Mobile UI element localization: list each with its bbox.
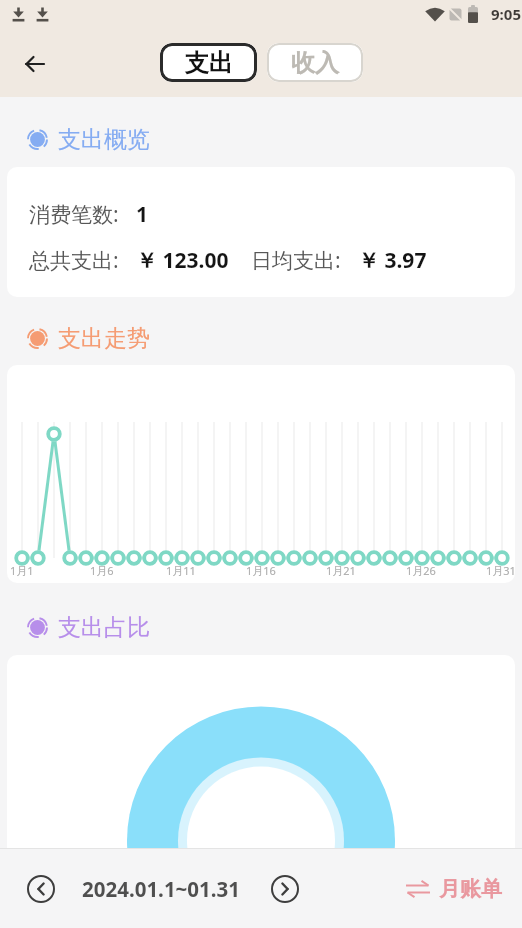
- staticText: 2024.01.1~01.31: [82, 875, 240, 903]
- button[interactable]: 收入: [267, 43, 363, 82]
- staticText: 1月16: [246, 563, 276, 578]
- staticText: 1: [136, 200, 149, 229]
- staticText: 1月21: [326, 563, 356, 578]
- staticText: 1月31: [486, 563, 515, 578]
- staticText: 1月11: [166, 563, 196, 578]
- staticText: 支出: [185, 48, 233, 78]
- button[interactable]: 月账单: [405, 876, 502, 902]
- staticText: 1月6: [90, 563, 114, 578]
- staticText: 总共支出:: [29, 246, 119, 275]
- button[interactable]: [27, 875, 55, 903]
- staticText: 消费笔数:: [29, 200, 119, 229]
- staticText: 1月26: [406, 563, 436, 578]
- staticText: 支出占比: [58, 613, 150, 642]
- staticText: ￥ 123.00: [136, 246, 229, 275]
- staticText: 支出走势: [58, 324, 150, 353]
- staticText: 收入: [291, 48, 339, 78]
- staticText: 支出概览: [58, 125, 150, 154]
- button[interactable]: [24, 53, 46, 75]
- staticText: 日均支出:: [251, 246, 341, 275]
- button[interactable]: 支出: [160, 43, 257, 82]
- staticText: 1月1: [10, 563, 34, 578]
- staticText: 9:05: [491, 4, 521, 24]
- staticText: 月账单: [439, 876, 502, 902]
- staticText: ￥ 3.97: [358, 246, 427, 275]
- button[interactable]: [271, 875, 299, 903]
